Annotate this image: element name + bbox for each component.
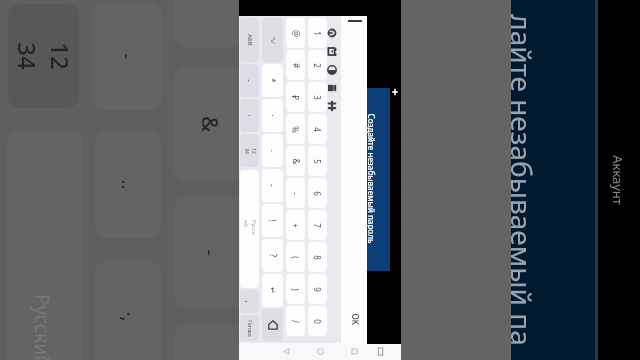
button[interactable]: # <box>286 50 305 80</box>
button[interactable]: 0 <box>308 306 327 336</box>
button[interactable]: АБВ <box>240 18 259 62</box>
button[interactable]: + <box>286 210 305 240</box>
button[interactable]: 3 <box>308 82 327 112</box>
staticText: + <box>290 223 301 228</box>
button[interactable]: - <box>240 64 259 97</box>
staticText: 12 34 <box>11 42 77 70</box>
staticText: 12 34 <box>243 148 257 154</box>
button[interactable]: 12 34 <box>240 134 259 167</box>
staticText: 9 <box>312 287 323 292</box>
button[interactable] <box>240 170 259 288</box>
button[interactable]: ↵ <box>262 274 283 307</box>
button[interactable]: Settings <box>326 100 338 112</box>
button[interactable]: % <box>286 114 305 144</box>
staticText: 2 <box>312 63 323 68</box>
button[interactable]: 5 <box>308 146 327 176</box>
staticText: · <box>267 114 278 117</box>
staticText: .. <box>115 179 140 189</box>
staticText: °\/ <box>269 36 277 44</box>
staticText: - <box>290 192 301 195</box>
staticText: 7 <box>312 223 323 228</box>
staticText: % <box>290 126 301 133</box>
staticText: ? <box>267 253 278 257</box>
staticText: @ <box>290 29 301 37</box>
staticText: - <box>267 184 278 187</box>
button[interactable]: .. <box>262 134 283 167</box>
button[interactable]: 4 <box>308 114 327 144</box>
button[interactable]: Emoji <box>326 27 338 39</box>
staticText: · <box>244 114 255 117</box>
button[interactable]: Clipboard <box>375 346 386 357</box>
staticText: ) <box>290 288 301 291</box>
button[interactable]: * <box>262 64 283 97</box>
staticText: - <box>244 79 255 82</box>
staticText: Аккаунт <box>609 155 627 205</box>
staticText: # <box>290 62 301 68</box>
staticText: * <box>267 78 278 83</box>
button[interactable]: / <box>286 306 305 336</box>
button[interactable]: ! <box>262 204 283 237</box>
button[interactable]: - <box>262 169 283 202</box>
staticText: ↵ <box>268 287 277 294</box>
button[interactable]: 1 <box>308 18 327 48</box>
staticText: 1 <box>312 31 323 36</box>
staticText: 6 <box>312 191 323 196</box>
button[interactable]: , <box>240 290 259 313</box>
staticText: 8 <box>312 255 323 260</box>
staticText: , <box>244 300 255 303</box>
button[interactable]: · <box>262 99 283 132</box>
staticText: - <box>197 249 222 255</box>
staticText: Готово <box>246 320 253 337</box>
button[interactable]: 6 <box>308 178 327 208</box>
button[interactable]: ₽ <box>286 82 305 112</box>
button[interactable]: 7 <box>308 210 327 240</box>
button[interactable]: Back <box>281 346 292 357</box>
button[interactable]: 8 <box>308 242 327 272</box>
button[interactable]: - <box>286 178 305 208</box>
button[interactable]: Themes <box>326 64 338 76</box>
staticText: ₽ <box>290 95 301 100</box>
button[interactable]: @ <box>286 18 305 48</box>
button[interactable]: ? <box>262 239 283 272</box>
staticText: .. <box>269 149 277 153</box>
staticText: & <box>290 158 301 164</box>
button[interactable]: Recent apps <box>349 346 360 357</box>
button[interactable]: Готово <box>240 315 259 341</box>
button[interactable]: 9 <box>308 274 327 304</box>
button[interactable]: · <box>240 99 259 132</box>
staticText: лайте незабываемый па <box>507 14 541 346</box>
staticText: ( <box>290 256 301 259</box>
staticText: Русский <box>241 219 257 238</box>
button[interactable]: ) <box>286 274 305 304</box>
button[interactable]: Home <box>315 346 326 357</box>
staticText: OK <box>349 313 360 325</box>
staticText: - <box>114 53 139 59</box>
staticText: 5 <box>312 159 323 164</box>
staticText: АБВ <box>246 34 254 46</box>
staticText: Создайте незабываемый пароль <box>365 113 376 243</box>
staticText: 0 <box>312 319 323 324</box>
button[interactable]: GIF <box>326 82 338 94</box>
staticText: 4 <box>312 127 323 132</box>
button[interactable]: & <box>286 146 305 176</box>
staticText: 3 <box>312 95 323 100</box>
button[interactable]: OK <box>345 307 365 331</box>
staticText: Русский <box>29 294 55 360</box>
staticText: ! <box>267 219 278 222</box>
staticText: & <box>195 115 225 132</box>
button[interactable]: 2 <box>308 50 327 80</box>
button[interactable]: ( <box>286 242 305 272</box>
button[interactable] <box>262 309 283 341</box>
staticText: ·, <box>115 311 140 321</box>
button[interactable]: Stickers <box>326 46 338 58</box>
button[interactable]: °\/ <box>262 18 283 62</box>
staticText: / <box>290 320 301 323</box>
button[interactable]: Home <box>262 309 283 341</box>
